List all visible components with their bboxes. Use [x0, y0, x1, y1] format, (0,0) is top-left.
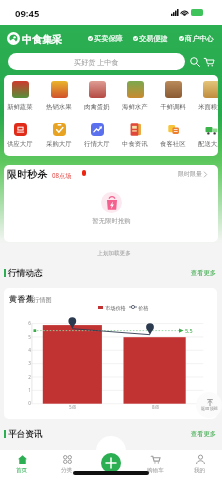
staticText: 09:45	[15, 7, 40, 20]
staticText: 上划加载更多	[97, 250, 131, 257]
button[interactable]: 热销水果	[40, 77, 78, 121]
button[interactable]: 商户中心	[179, 31, 222, 45]
button[interactable]: 采购大厅	[40, 121, 78, 154]
staticText: 0	[28, 400, 31, 406]
staticText: 采购大厅	[46, 140, 72, 148]
staticText: 1	[28, 387, 31, 393]
staticText: 行情大厅	[84, 140, 110, 148]
staticText: 08点场	[52, 171, 72, 179]
staticText: 暂无限时抢购	[92, 217, 131, 225]
staticText: 市场价格	[105, 305, 126, 312]
button[interactable]: 配送大厅	[192, 121, 218, 154]
staticText: 食客社区	[160, 140, 186, 148]
staticText: 返回顶部	[201, 406, 218, 411]
staticText: 5.5	[185, 327, 193, 334]
staticText: 3	[28, 360, 31, 366]
staticText: 8/8	[152, 404, 159, 410]
staticText: 中食集采	[22, 33, 62, 46]
staticText: 海鲜水产	[122, 103, 148, 111]
staticText: 分类	[61, 467, 73, 474]
staticText: 查看更多	[190, 269, 216, 277]
button[interactable]: 肉禽蛋奶	[78, 77, 116, 121]
staticText: 买卖保障	[94, 34, 123, 43]
button[interactable]: 首页	[2, 450, 42, 480]
staticText: 4	[28, 347, 31, 353]
staticText: 新鲜蔬菜	[7, 103, 33, 111]
staticText: 行情图	[33, 296, 52, 304]
button[interactable]: 购物车	[203, 56, 215, 68]
staticText: 肉禽蛋奶	[84, 103, 110, 111]
staticText: 热销水果	[46, 103, 72, 111]
button[interactable]: 买好货 上中食	[8, 53, 185, 70]
button[interactable]: 食客社区	[154, 121, 192, 154]
staticText: 6	[28, 320, 31, 326]
staticText: 2	[28, 374, 31, 380]
staticText: 平台资讯	[8, 429, 43, 440]
staticText: 购物车	[147, 467, 164, 474]
button[interactable]: 发布	[101, 453, 121, 473]
staticText: 干鲜调料	[160, 103, 186, 111]
staticText: 供应大厅	[7, 140, 33, 148]
button[interactable]: 干鲜调料	[154, 77, 192, 121]
staticText: 限时限量	[178, 170, 202, 178]
staticText: 我的	[194, 467, 206, 474]
staticText: 价格	[138, 305, 149, 312]
button[interactable]: 交易便捷	[133, 31, 222, 45]
button[interactable]: 新鲜蔬菜	[4, 77, 39, 121]
button[interactable]: 分类	[47, 450, 87, 480]
button[interactable]: 购物车	[135, 450, 175, 480]
staticText: 交易便捷	[139, 34, 168, 43]
button[interactable]: 米面粮油	[192, 77, 218, 121]
staticText: 5/8	[69, 404, 76, 410]
staticText: 配送大厅	[198, 140, 218, 148]
staticText: 限时秒杀	[7, 168, 47, 181]
button[interactable]: 搜索	[189, 56, 201, 68]
staticText: 查看更多	[190, 430, 216, 438]
button[interactable]: 中食资讯	[116, 121, 154, 154]
staticText: 商户中心	[185, 34, 214, 43]
staticText: 中食资讯	[122, 140, 148, 148]
staticText: 米面粮油	[198, 103, 218, 111]
staticText: 买好货 上中食	[74, 57, 119, 67]
button[interactable]: 限时限量	[178, 167, 222, 181]
button[interactable]: 买卖保障	[88, 31, 222, 45]
staticText: 黄香蕉	[9, 294, 34, 304]
button[interactable]: 查看更多	[190, 430, 216, 438]
button[interactable]: 回到顶部	[196, 392, 222, 418]
button[interactable]: 查看更多	[190, 269, 216, 277]
button[interactable]: 供应大厅	[4, 121, 39, 154]
button[interactable]: 我的	[180, 450, 220, 480]
button[interactable]: 行情大厅	[78, 121, 116, 154]
staticText: 5	[28, 334, 31, 340]
button[interactable]: 海鲜水产	[116, 77, 154, 121]
staticText: 行情动态	[8, 268, 43, 279]
staticText: 首页	[16, 467, 28, 474]
